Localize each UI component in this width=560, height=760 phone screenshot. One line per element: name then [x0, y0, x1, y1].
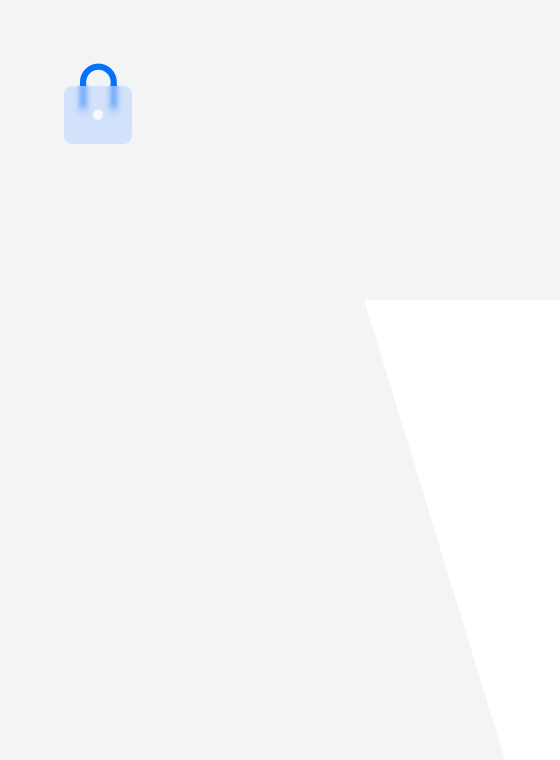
button[interactable]: Locked [0, 0, 560, 760]
